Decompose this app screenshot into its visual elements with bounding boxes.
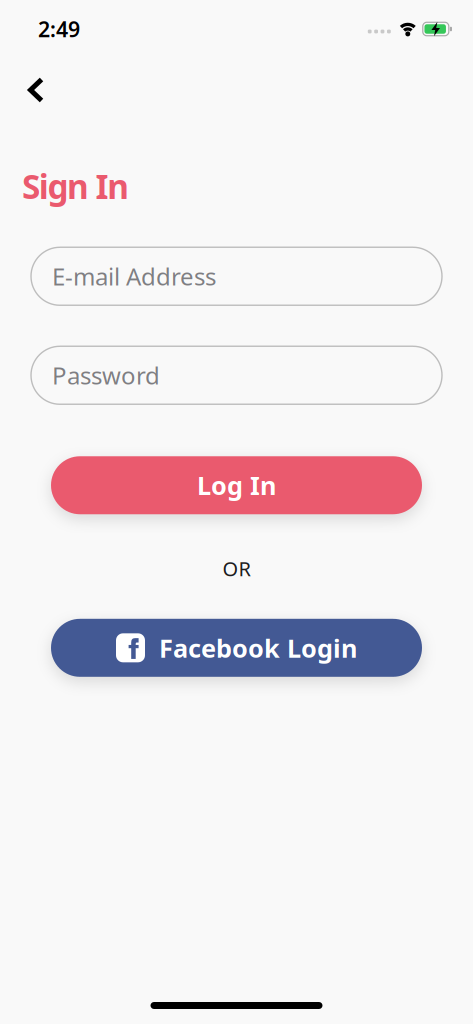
staticText: Log In <box>197 468 276 502</box>
staticText: Sign In <box>22 164 129 208</box>
button[interactable]: E-mail Address <box>31 247 442 305</box>
button[interactable]: Log In <box>51 456 422 514</box>
staticText: E-mail Address <box>52 260 216 292</box>
button[interactable]: Facebook Login <box>51 619 422 677</box>
staticText: OR <box>222 555 250 582</box>
staticText: 2:49 <box>38 15 80 43</box>
button[interactable]: Password <box>31 346 442 404</box>
staticText: Password <box>52 359 160 391</box>
staticText: Facebook Login <box>159 631 357 665</box>
button[interactable]: Back <box>0 78 44 102</box>
